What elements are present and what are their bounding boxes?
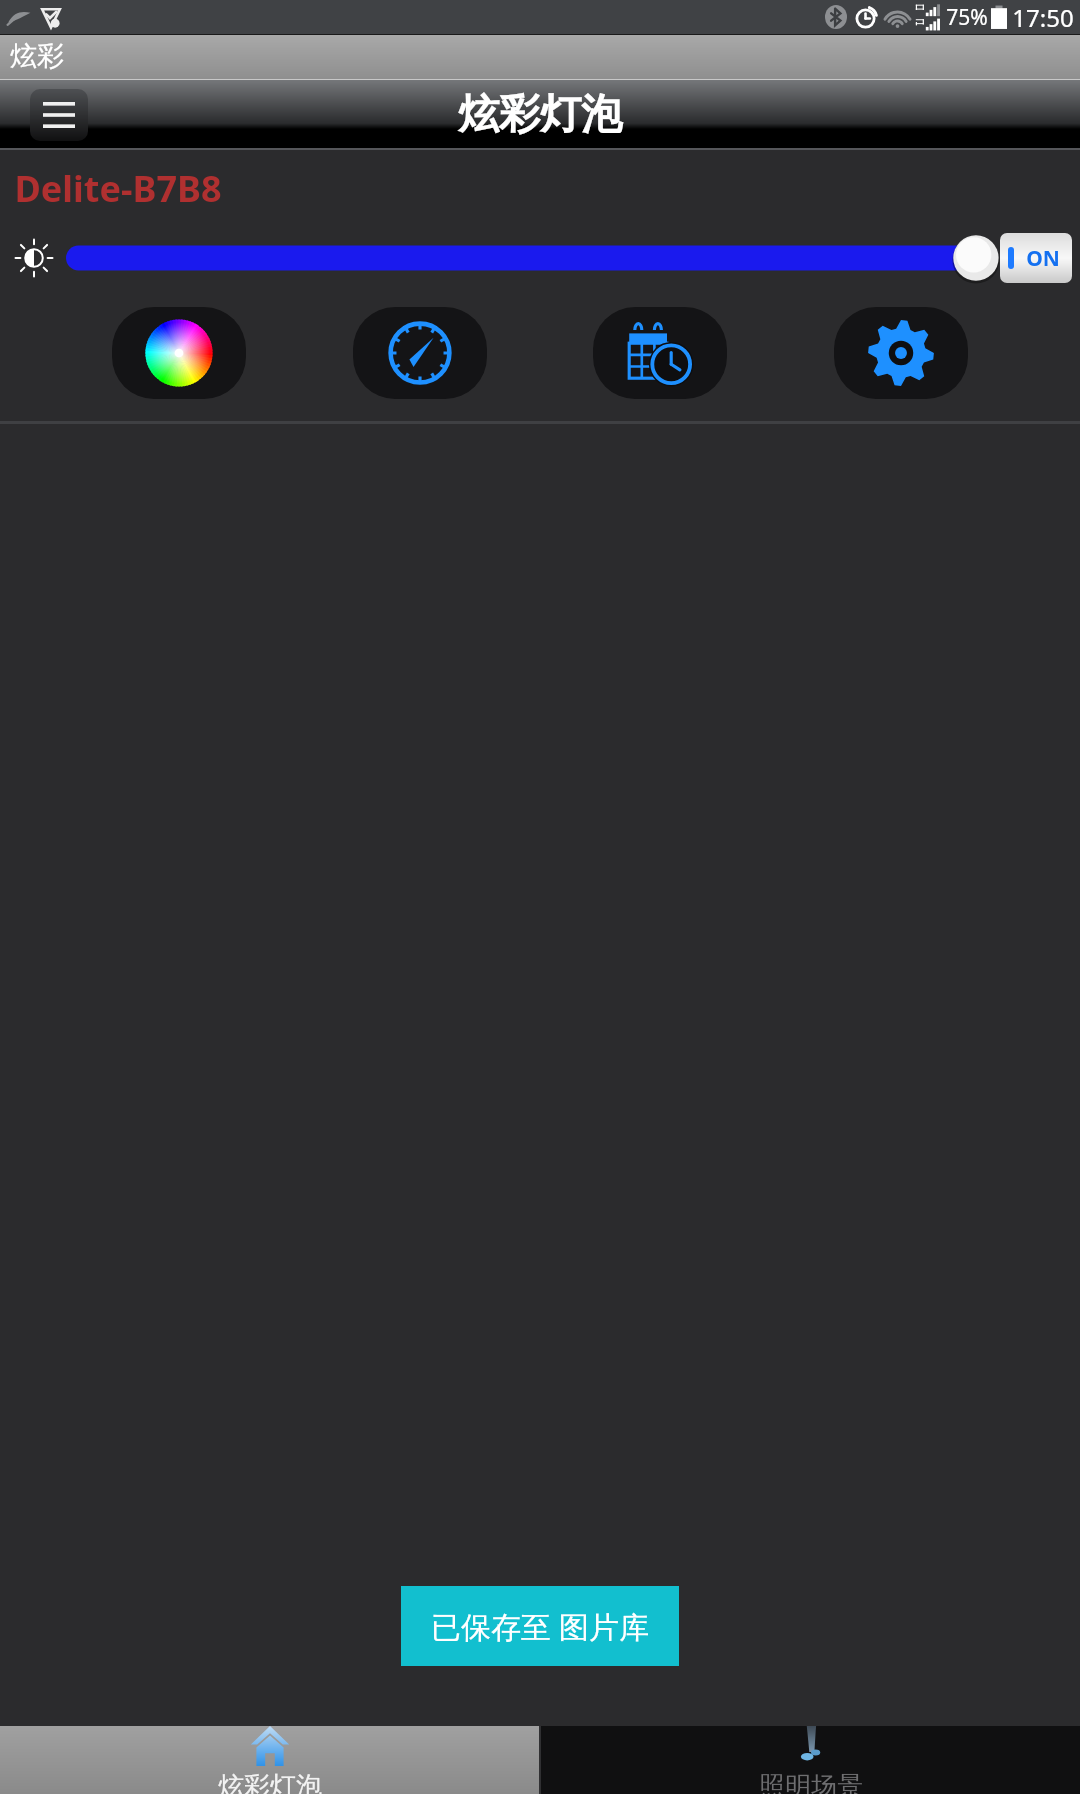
button[interactable]: 已保存至 图片库 [401,1586,679,1666]
staticText: 照明场景 [759,1770,863,1794]
staticText: 炫彩 [10,39,64,73]
button[interactable]: Colour wheel [112,307,246,399]
button[interactable]: 照明场景 [541,1726,1080,1794]
staticText: 已保存至 图片库 [431,1606,649,1647]
button[interactable]: Settings [834,307,968,399]
staticText: Delite-B7B8 [14,164,222,213]
button[interactable]: ON [1003,236,1069,280]
staticText: 17:50 [1012,1,1074,34]
button[interactable]: Timer [353,307,487,399]
button[interactable]: Menu [30,89,88,141]
staticText: 75% [946,3,988,32]
staticText: 炫彩灯泡 [218,1770,322,1794]
button[interactable]: 炫彩灯泡 [0,1726,539,1794]
staticText: 炫彩灯泡 [458,89,622,141]
staticText: ON [1026,244,1060,273]
button[interactable]: Schedule [593,307,727,399]
button[interactable] [66,231,990,285]
